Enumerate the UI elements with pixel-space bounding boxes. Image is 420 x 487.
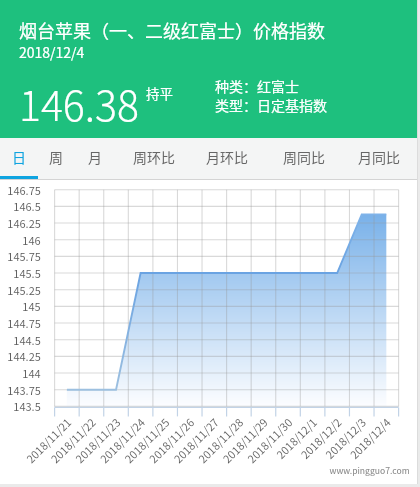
staticText: 类型：日定基指数	[215, 95, 327, 115]
staticText: 烟台苹果（一、二级红富士）价格指数	[19, 17, 325, 43]
staticText: 持平	[146, 83, 173, 103]
staticText: 周环比	[133, 147, 175, 167]
button[interactable]: 周环比	[115, 138, 193, 175]
staticText: 日	[12, 147, 26, 167]
button[interactable]: 周同比	[261, 138, 346, 175]
staticText: 2018/12/4	[19, 42, 85, 62]
staticText: 月环比	[206, 147, 248, 167]
button[interactable]: 月环比	[193, 138, 261, 175]
staticText: 月同比	[358, 147, 400, 167]
staticText: 周	[49, 147, 63, 167]
button[interactable]: 周	[38, 138, 74, 175]
button[interactable]: 月同比	[346, 138, 411, 175]
staticText: 月	[88, 147, 102, 167]
button[interactable]: 月	[74, 138, 115, 175]
staticText: 146.38	[19, 73, 139, 132]
staticText: 种类：红富士	[215, 76, 299, 96]
staticText: 周同比	[283, 147, 325, 167]
button[interactable]: 日	[0, 138, 38, 175]
